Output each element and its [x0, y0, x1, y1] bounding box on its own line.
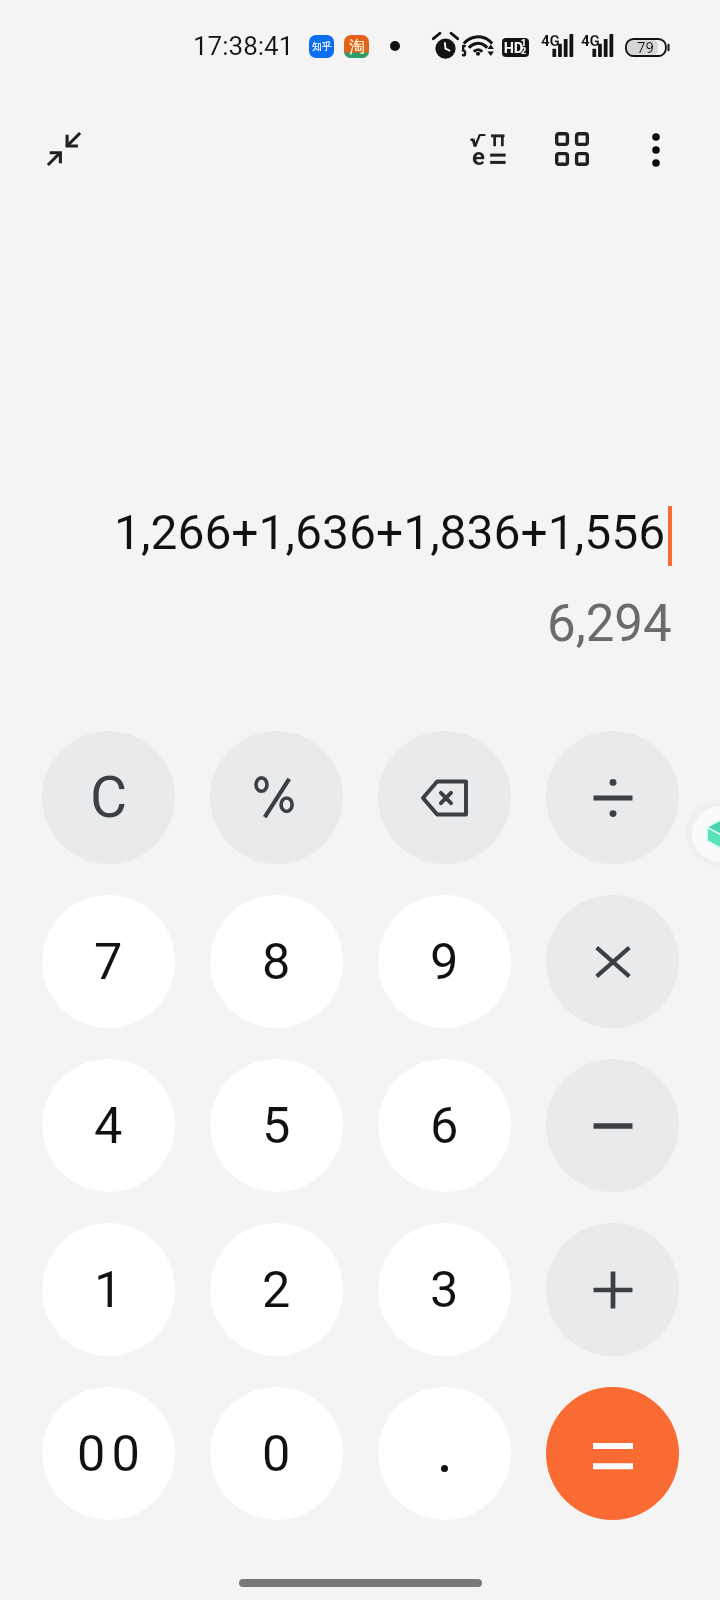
staticText: HD: [504, 40, 523, 56]
staticText: 4G: [541, 32, 560, 50]
button[interactable]: 9: [378, 895, 511, 1028]
button[interactable]: 0: [210, 1387, 343, 1520]
staticText: C: [90, 764, 128, 831]
staticText: 2: [262, 1260, 291, 1319]
button[interactable]: 00: [42, 1387, 175, 1520]
button[interactable]: Scientific mode: [455, 115, 521, 181]
button[interactable]: 6: [378, 1059, 511, 1192]
staticText: 1,266+1,636+1,836+1,556: [114, 504, 666, 560]
button[interactable]: Floating assistant: [686, 800, 720, 867]
staticText: 2: [521, 46, 527, 57]
button[interactable]: Divide: [546, 731, 679, 864]
button[interactable]: 7: [42, 895, 175, 1028]
button[interactable]: 5: [210, 1059, 343, 1192]
staticText: 5: [262, 1096, 291, 1155]
staticText: 1: [521, 38, 527, 49]
button[interactable]: 1: [42, 1223, 175, 1356]
staticText: 6: [430, 1096, 459, 1155]
staticText: 6,294: [547, 594, 672, 654]
button[interactable]: Multiply: [546, 895, 679, 1028]
button[interactable]: Equals: [546, 1387, 679, 1520]
staticText: 3: [430, 1260, 459, 1319]
button[interactable]: 3: [378, 1223, 511, 1356]
button[interactable]: 4: [42, 1059, 175, 1192]
button[interactable]: C: [42, 731, 175, 864]
button[interactable]: 2: [210, 1223, 343, 1356]
staticText: 0: [262, 1424, 291, 1483]
button[interactable]: More options: [623, 117, 689, 183]
staticText: 4G: [581, 32, 600, 50]
staticText: 知乎: [312, 40, 332, 53]
staticText: 17:38:41: [193, 31, 294, 61]
staticText: 淘: [349, 37, 365, 57]
button[interactable]: Backspace: [378, 731, 511, 864]
button[interactable]: History: [539, 116, 605, 182]
staticText: e: [472, 143, 485, 171]
button[interactable]: Percent: [210, 731, 343, 864]
button[interactable]: Decimal point: [378, 1387, 511, 1520]
button[interactable]: Plus: [546, 1223, 679, 1356]
button[interactable]: Collapse: [31, 116, 97, 182]
staticText: 7: [94, 932, 123, 991]
button[interactable]: 8: [210, 895, 343, 1028]
button[interactable]: Minus: [546, 1059, 679, 1192]
staticText: 9: [430, 932, 459, 991]
staticText: 8: [262, 932, 291, 991]
staticText: 00: [77, 1424, 146, 1483]
staticText: 1: [94, 1260, 123, 1319]
staticText: 79: [637, 39, 654, 57]
staticText: 4: [94, 1096, 123, 1155]
